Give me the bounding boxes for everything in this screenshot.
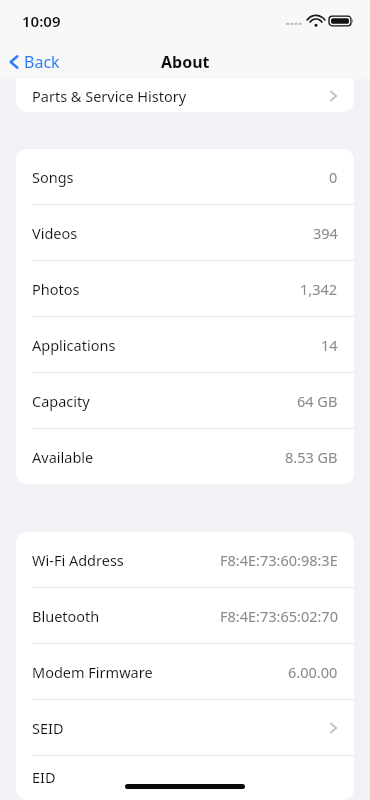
staticText: Photos (32, 279, 80, 299)
staticText: Bluetooth (32, 606, 100, 626)
staticText: 1,342 (300, 279, 338, 299)
button[interactable]: Photos (16, 261, 354, 316)
button[interactable]: EID (16, 756, 354, 800)
staticText: 14 (321, 335, 338, 355)
staticText: Songs (32, 167, 74, 187)
staticText: EID (32, 767, 56, 787)
button[interactable]: Parts & Service History (16, 79, 354, 112)
staticText: SEID (32, 718, 64, 738)
staticText: About (161, 51, 210, 73)
staticText: 394 (313, 223, 338, 243)
button[interactable]: Back (0, 47, 70, 77)
button[interactable]: Capacity (16, 373, 354, 428)
staticText: Videos (32, 223, 78, 243)
button[interactable]: SEID (16, 700, 354, 755)
staticText: 6.00.00 (288, 662, 338, 682)
button[interactable]: Available (16, 429, 354, 484)
staticText: Capacity (32, 391, 90, 411)
button[interactable]: Songs (16, 149, 354, 204)
button[interactable]: Videos (16, 205, 354, 260)
button[interactable]: Modem Firmware (16, 644, 354, 699)
button[interactable]: Applications (16, 317, 354, 372)
staticText: F8:4E:73:65:02:70 (220, 606, 338, 626)
staticText: Modem Firmware (32, 662, 153, 682)
button[interactable]: Bluetooth (16, 588, 354, 643)
staticText: Wi-Fi Address (32, 550, 124, 570)
staticText: 8.53 GB (285, 447, 338, 467)
staticText: 10:09 (22, 11, 61, 31)
staticText: 64 GB (297, 391, 338, 411)
staticText: Applications (32, 335, 116, 355)
staticText: Back (24, 51, 60, 73)
staticText: Parts & Service History (32, 86, 187, 106)
button[interactable]: Wi-Fi Address (16, 532, 354, 587)
staticText: 0 (329, 167, 338, 187)
other: Open details (329, 720, 338, 736)
other: Open details (329, 88, 338, 104)
staticText: F8:4E:73:60:98:3E (220, 550, 338, 570)
staticText: Available (32, 447, 94, 467)
